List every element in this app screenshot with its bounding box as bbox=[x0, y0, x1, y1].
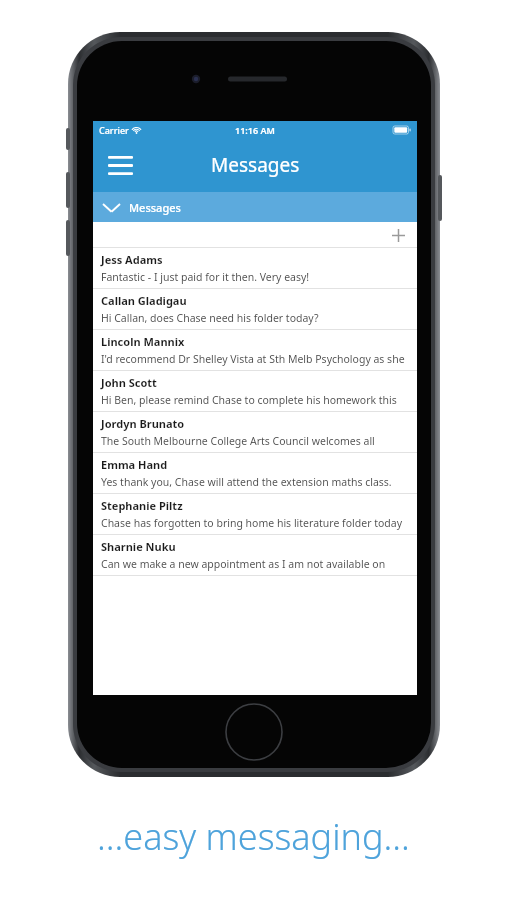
staticText: I'd recommend Dr Shelley Vista at Sth Me… bbox=[101, 352, 409, 366]
staticText: Chase has forgotten to bring home his li… bbox=[101, 516, 409, 530]
staticText: 11:16 AM bbox=[235, 124, 275, 136]
button[interactable]: Menu bbox=[102, 147, 138, 183]
button[interactable]: Stephanie Piltz bbox=[93, 494, 417, 535]
staticText: Jordyn Brunato bbox=[101, 416, 185, 431]
staticText: Hi Ben, please remind Chase to complete … bbox=[101, 393, 409, 407]
button[interactable]: Messages bbox=[93, 192, 417, 222]
button[interactable]: Jess Adams bbox=[93, 248, 417, 289]
button[interactable]: New message bbox=[387, 224, 409, 246]
staticText: Carrier bbox=[99, 124, 129, 136]
button[interactable]: Lincoln Mannix bbox=[93, 330, 417, 371]
button[interactable]: John Scott bbox=[93, 371, 417, 412]
staticText: Hi Callan, does Chase need his folder to… bbox=[101, 311, 319, 325]
staticText: Emma Hand bbox=[101, 457, 168, 472]
other: Home bbox=[225, 703, 283, 761]
staticText: ...easy messaging... bbox=[97, 812, 410, 861]
staticText: Yes thank you, Chase will attend the ext… bbox=[101, 475, 392, 489]
staticText: Stephanie Piltz bbox=[101, 498, 183, 513]
button[interactable]: Callan Gladigau bbox=[93, 289, 417, 330]
staticText: Messages bbox=[129, 200, 181, 215]
staticText: The South Melbourne College Arts Council… bbox=[101, 434, 409, 448]
button[interactable]: Sharnie Nuku bbox=[93, 535, 417, 576]
staticText: Callan Gladigau bbox=[101, 293, 187, 308]
staticText: Fantastic - I just paid for it then. Ver… bbox=[101, 270, 310, 284]
button[interactable]: Jordyn Brunato bbox=[93, 412, 417, 453]
staticText: Lincoln Mannix bbox=[101, 334, 185, 349]
staticText: Jess Adams bbox=[101, 252, 163, 267]
staticText: Can we make a new appointment as I am no… bbox=[101, 557, 409, 571]
button[interactable]: Emma Hand bbox=[93, 453, 417, 494]
staticText: John Scott bbox=[101, 375, 157, 390]
staticText: Sharnie Nuku bbox=[101, 539, 176, 554]
staticText: Messages bbox=[211, 152, 300, 178]
